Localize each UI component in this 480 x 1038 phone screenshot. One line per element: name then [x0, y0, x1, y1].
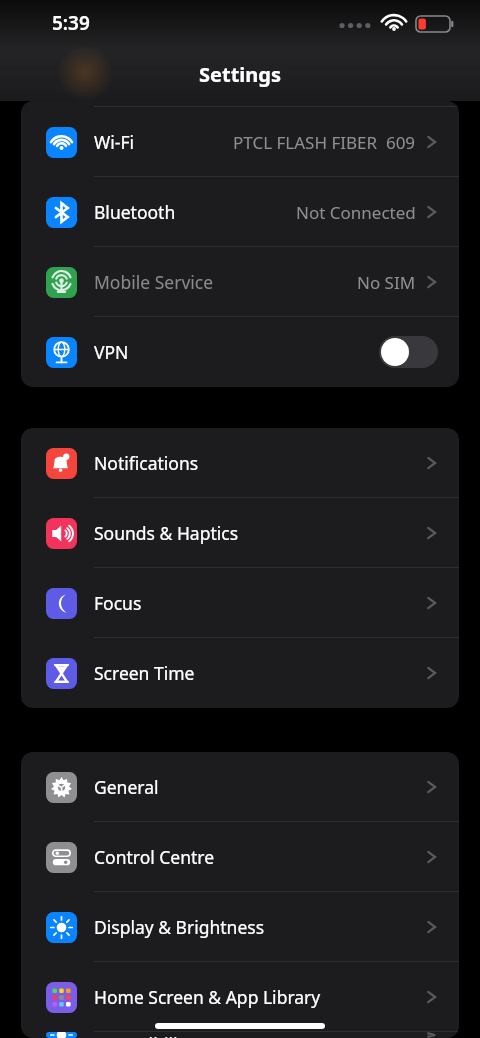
staticText: Focus [94, 591, 142, 615]
button[interactable]: Focus [21, 568, 459, 638]
button[interactable]: Control Centre [21, 822, 459, 892]
staticText: Notifications [94, 451, 199, 475]
staticText: Not Connected [296, 201, 416, 224]
button[interactable]: VPN toggle, off [379, 336, 438, 368]
staticText: Wi-Fi [94, 130, 135, 154]
button[interactable]: Home Screen & App Library [21, 962, 459, 1032]
button[interactable]: Display & Brightness [21, 892, 459, 962]
button[interactable]: Accessibility [21, 1032, 459, 1038]
staticText: Settings [199, 61, 281, 88]
staticText: Accessibility [94, 1032, 193, 1038]
staticText: No SIM [357, 271, 416, 294]
button[interactable]: Wi-Fi [21, 107, 459, 177]
button[interactable]: General [21, 752, 459, 822]
button[interactable]: VPN [21, 317, 459, 387]
staticText: Sounds & Haptics [94, 521, 239, 545]
staticText: VPN [94, 340, 129, 364]
staticText: Control Centre [94, 845, 215, 869]
staticText: Screen Time [94, 661, 195, 685]
button[interactable]: Screen Time [21, 638, 459, 708]
button[interactable]: Notifications [21, 428, 459, 498]
button[interactable]: Sounds & Haptics [21, 498, 459, 568]
button[interactable]: Bluetooth [21, 177, 459, 247]
staticText: 5:39 [52, 10, 90, 36]
staticText: Mobile Service [94, 270, 214, 294]
staticText: PTCL FLASH FIBER 609 [233, 131, 416, 154]
staticText: Display & Brightness [94, 915, 265, 939]
staticText: General [94, 775, 159, 799]
staticText: Home Screen & App Library [94, 985, 321, 1009]
button[interactable]: Mobile Service [21, 247, 459, 317]
staticText: Bluetooth [94, 200, 176, 224]
